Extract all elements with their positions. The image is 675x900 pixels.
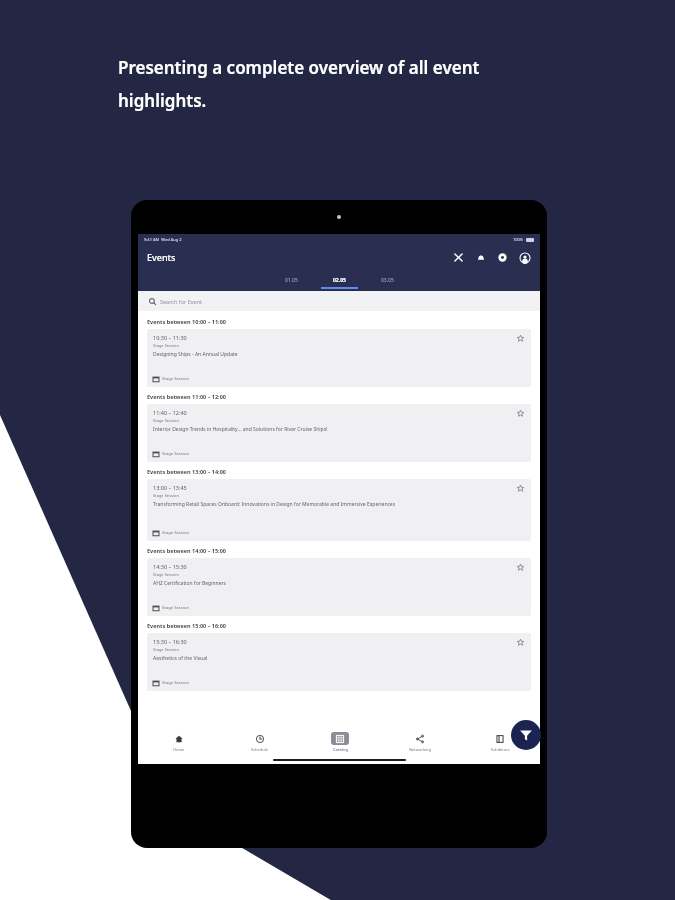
- staticText: 02.05: [333, 277, 346, 284]
- button[interactable]: 14:30 – 15:30: [147, 558, 531, 616]
- button[interactable]: Filter: [511, 720, 541, 750]
- staticText: Aesthetics of the Visual: [153, 655, 208, 662]
- staticText: 01.05: [285, 277, 298, 284]
- staticText: Home: [173, 747, 185, 752]
- button[interactable]: 15:30 – 16:30: [147, 633, 531, 691]
- staticText: 11:40 – 12:40: [153, 409, 187, 416]
- staticText: Schedule: [251, 747, 269, 752]
- button[interactable]: 10:30 – 11:30: [147, 329, 531, 387]
- staticText: Presenting a complete overview of all ev…: [118, 56, 480, 79]
- button[interactable]: 13:00 – 13:45: [147, 479, 531, 541]
- button[interactable]: 03.05: [363, 269, 411, 289]
- button[interactable]: Bookmark: [516, 638, 525, 647]
- staticText: Transforming Retail Spaces Onboard: Inno…: [153, 501, 396, 508]
- button[interactable]: 01.05: [267, 269, 315, 289]
- button[interactable]: Profile: [518, 251, 531, 264]
- button[interactable]: Catalog: [300, 728, 380, 756]
- staticText: Events between 15:00 – 16:00: [147, 622, 226, 629]
- staticText: Events between 10:00 – 11:00: [147, 318, 226, 325]
- staticText: 13:00 – 13:45: [153, 484, 187, 491]
- staticText: 10:30 – 11:30: [153, 334, 187, 341]
- staticText: Events between 14:00 – 15:00: [147, 547, 226, 554]
- staticText: Stage Session: [162, 376, 190, 382]
- staticText: 100%: [513, 237, 524, 242]
- staticText: 9:41 AM Wed Aug 2: [144, 237, 182, 242]
- staticText: Stage Session: [153, 418, 179, 423]
- button[interactable]: Scan: [452, 251, 465, 264]
- staticText: Exhibitors: [491, 747, 510, 752]
- staticText: Stage Session: [153, 647, 179, 652]
- staticText: Stage Session: [153, 493, 179, 498]
- button[interactable]: Notifications: [474, 251, 487, 264]
- staticText: Events between 11:00 – 12:00: [147, 393, 226, 400]
- staticText: Stage Session: [162, 451, 190, 457]
- button[interactable]: Bookmark: [516, 484, 525, 493]
- staticText: Search for Event: [160, 298, 203, 305]
- staticText: highlights.: [118, 89, 207, 112]
- staticText: 03.05: [381, 277, 394, 284]
- button[interactable]: Networking: [380, 728, 460, 756]
- staticText: Stage Session: [153, 343, 179, 348]
- staticText: Catalog: [333, 747, 348, 752]
- button[interactable]: Settings: [496, 251, 509, 264]
- button[interactable]: 11:40 – 12:40: [147, 404, 531, 462]
- button[interactable]: Bookmark: [516, 409, 525, 418]
- button[interactable]: Search for Event: [138, 291, 540, 311]
- staticText: Events: [147, 251, 176, 263]
- staticText: Stage Session: [162, 680, 190, 686]
- button[interactable]: Schedule: [219, 728, 300, 756]
- staticText: Stage Session: [162, 530, 190, 536]
- staticText: Events between 13:00 – 14:00: [147, 468, 226, 475]
- button[interactable]: Bookmark: [516, 334, 525, 343]
- staticText: 15:30 – 16:30: [153, 638, 187, 645]
- staticText: Designing Ships - An Annual Update: [153, 351, 238, 358]
- staticText: Interior Design Trends in Hospitality...…: [153, 426, 328, 433]
- button[interactable]: 02.05: [315, 269, 363, 289]
- staticText: Networking: [409, 747, 432, 752]
- staticText: AHZ Certification for Beginners: [153, 580, 226, 587]
- button[interactable]: Home: [138, 728, 219, 756]
- staticText: Stage Session: [153, 572, 179, 577]
- button[interactable]: Exhibitors: [460, 728, 540, 756]
- staticText: 14:30 – 15:30: [153, 563, 187, 570]
- button[interactable]: Bookmark: [516, 563, 525, 572]
- staticText: Stage Session: [162, 605, 190, 611]
